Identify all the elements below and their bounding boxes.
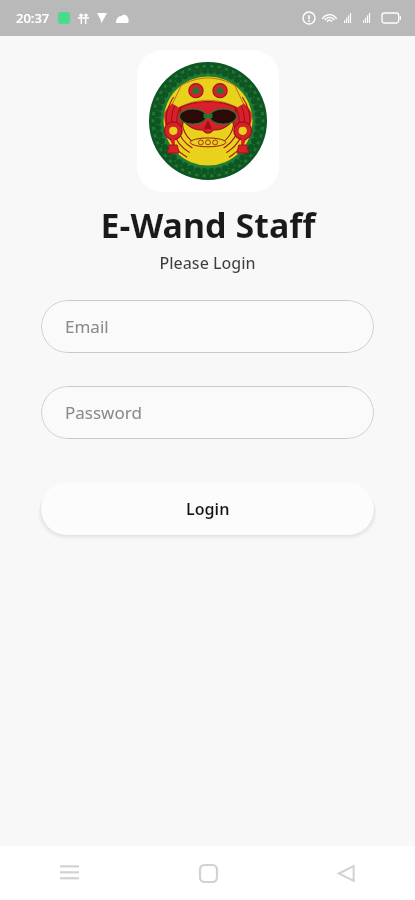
button[interactable]: Email (41, 300, 374, 353)
button[interactable]: Back (277, 846, 415, 900)
staticText: Login (186, 498, 230, 520)
staticText: E-Wand Staff (100, 202, 316, 248)
staticText: Password (65, 401, 142, 424)
staticText: Email (65, 315, 109, 338)
button[interactable]: Recents (0, 846, 139, 900)
button[interactable]: Home (139, 846, 277, 900)
staticText: 20:37 (16, 9, 50, 27)
button[interactable]: Password (41, 386, 374, 439)
staticText: Please Login (159, 252, 256, 274)
button[interactable]: Login (41, 483, 374, 535)
